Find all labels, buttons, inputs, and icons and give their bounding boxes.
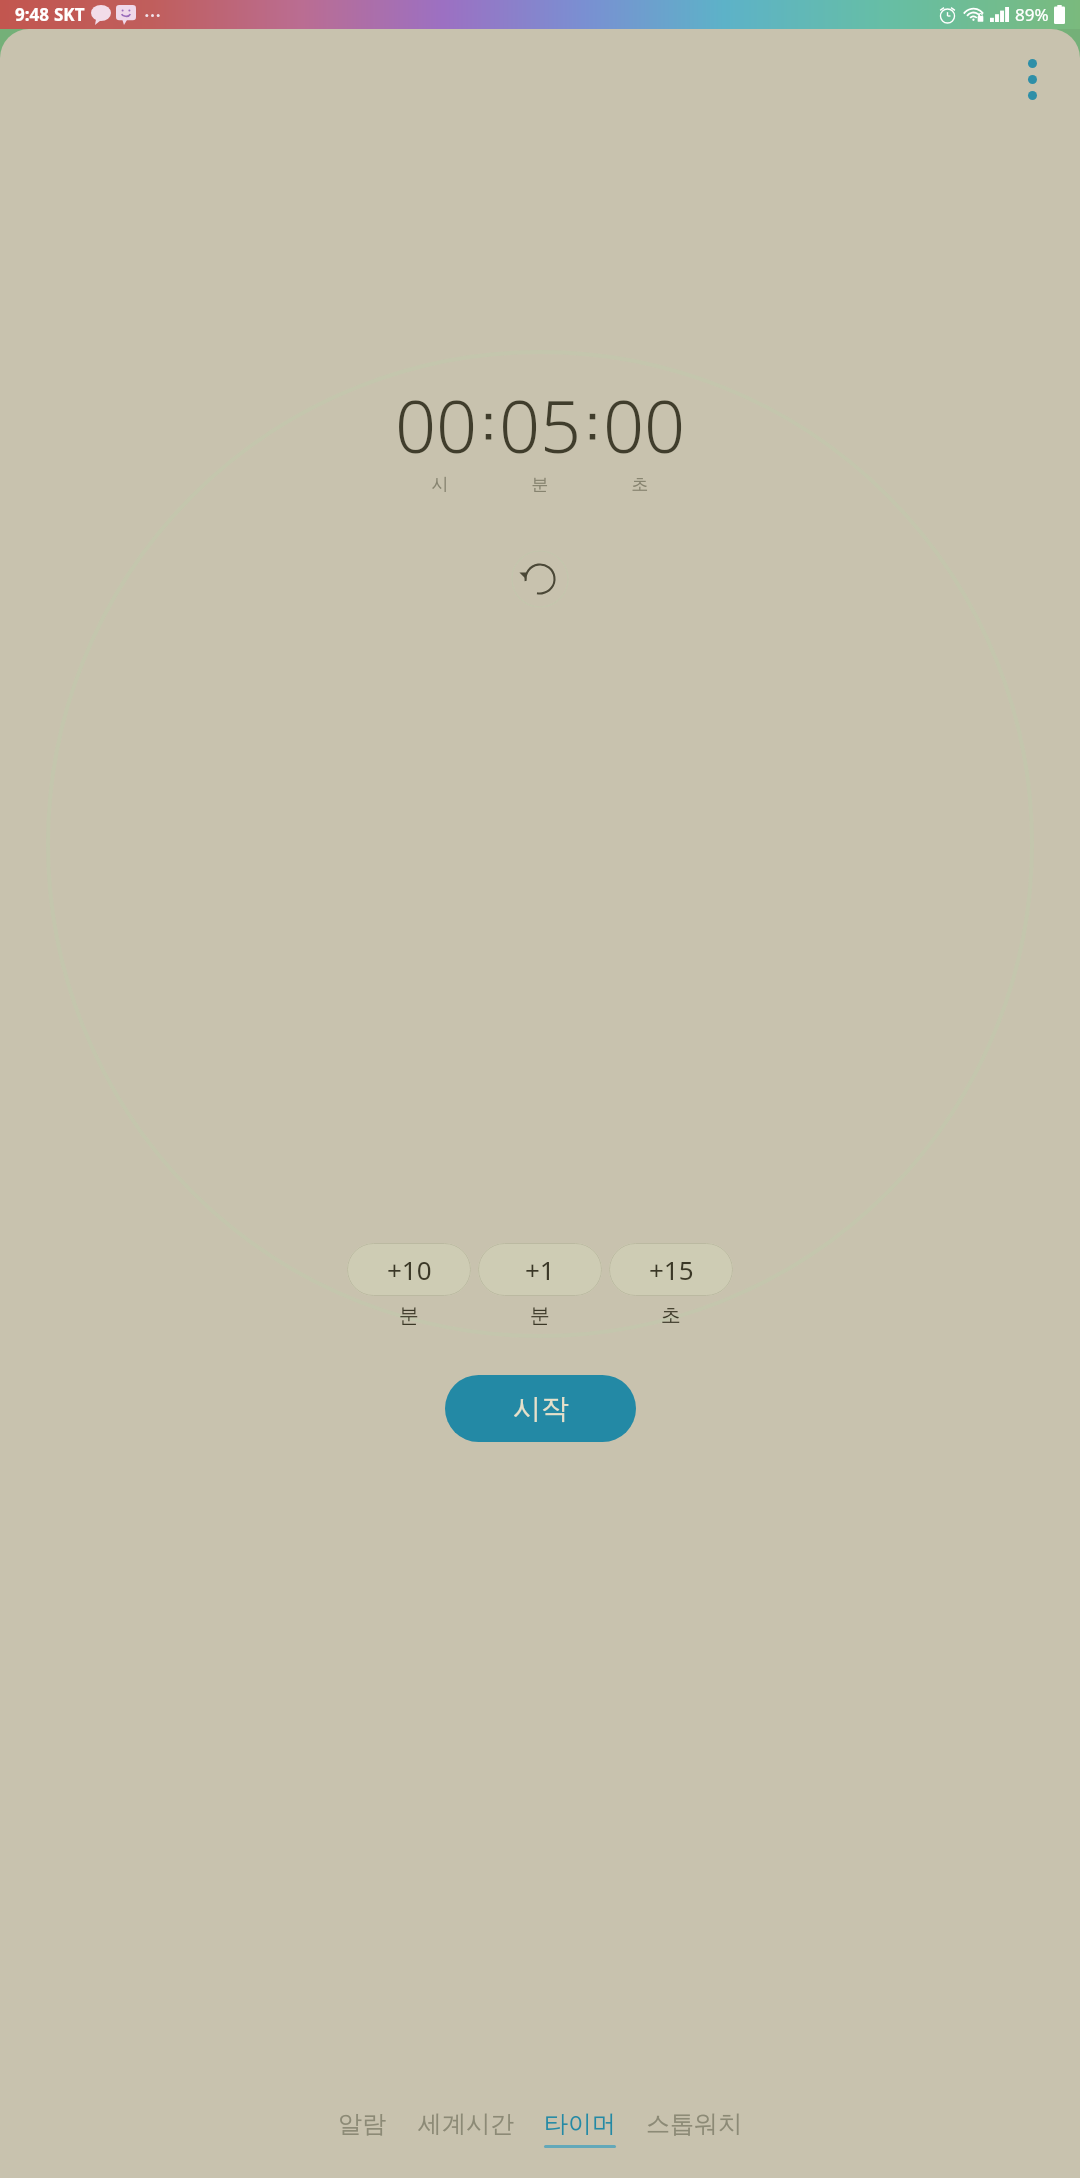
- button[interactable]: More options: [1004, 51, 1060, 107]
- staticText: 세계시간: [418, 2109, 514, 2139]
- staticText: 스톱워치: [646, 2109, 742, 2139]
- button[interactable]: 스톱워치: [644, 2109, 744, 2148]
- staticText: 초: [590, 474, 690, 495]
- staticText: +1: [525, 1252, 555, 1287]
- button[interactable]: 타이머: [542, 2109, 618, 2148]
- staticText: 89%: [1015, 3, 1049, 26]
- staticText: +15: [649, 1252, 694, 1287]
- staticText: 시: [390, 474, 490, 495]
- staticText: 00: [603, 376, 686, 474]
- staticText: SKT: [54, 3, 85, 26]
- staticText: 분: [399, 1303, 419, 1328]
- button[interactable]: 알람: [336, 2109, 388, 2148]
- button[interactable]: +1: [478, 1243, 602, 1296]
- staticText: 타이머: [544, 2109, 616, 2139]
- staticText: 분: [530, 1303, 550, 1328]
- staticText: 알람: [338, 2109, 386, 2139]
- staticText: 9:48: [15, 3, 49, 26]
- staticText: 분: [490, 474, 590, 495]
- staticText: +10: [387, 1252, 432, 1287]
- staticText: 05: [499, 376, 582, 474]
- button[interactable]: 시작: [445, 1375, 636, 1442]
- staticText: 초: [661, 1303, 681, 1328]
- button[interactable]: +10: [347, 1243, 471, 1296]
- button[interactable]: 세계시간: [416, 2109, 516, 2148]
- button[interactable]: Reset timer: [511, 550, 569, 608]
- staticText: 00: [395, 376, 478, 474]
- button[interactable]: +15: [609, 1243, 733, 1296]
- staticText: 시작: [513, 1391, 569, 1426]
